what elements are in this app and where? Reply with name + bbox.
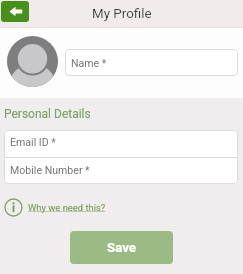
button[interactable]: Mobile Number * <box>4 157 238 184</box>
staticText: Save <box>107 240 137 256</box>
staticText: Why we need this? <box>28 202 106 213</box>
staticText: Email ID * <box>10 136 56 148</box>
button[interactable]: Back <box>1 1 29 22</box>
staticText: Personal Details <box>4 107 91 121</box>
button[interactable]: Email ID * <box>4 130 238 157</box>
button[interactable]: Profile photo <box>7 36 58 87</box>
button[interactable]: Save <box>70 231 173 264</box>
staticText: Mobile Number * <box>10 164 90 176</box>
button[interactable]: Name * <box>65 49 238 76</box>
staticText: My Profile <box>92 6 152 22</box>
button[interactable]: Why we need this? <box>3 197 81 218</box>
staticText: Name * <box>71 57 107 69</box>
